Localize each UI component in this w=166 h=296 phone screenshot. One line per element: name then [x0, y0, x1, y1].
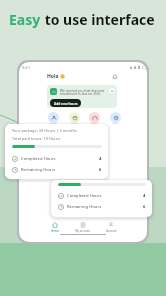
- button[interactable]: Home: [46, 221, 64, 234]
- staticText: Add new hours: [54, 101, 78, 105]
- button[interactable]: Remaining Hours: [58, 204, 146, 210]
- button[interactable]: Shortcut: [110, 112, 121, 123]
- button[interactable]: Shortcut: [69, 112, 80, 123]
- staticText: 6: [99, 167, 102, 173]
- staticText: Completed Hours: [67, 193, 102, 199]
- button[interactable]: Shortcut: [48, 112, 59, 123]
- staticText: Home: [51, 229, 59, 233]
- button[interactable]: Notifications: [111, 73, 118, 80]
- staticText: Your package: 30 Hours | 3 months: [12, 128, 77, 133]
- button[interactable]: Dismiss: [109, 88, 114, 93]
- staticText: 4: [99, 156, 102, 162]
- staticText: 9:41: [22, 65, 30, 70]
- staticText: Easy: [9, 10, 41, 29]
- button[interactable]: Completed Hours: [58, 193, 146, 199]
- staticText: Remaining Hours: [21, 167, 56, 173]
- staticText: to use interface: [41, 10, 155, 29]
- staticText: Total paid hours: 10 Hours: [12, 136, 61, 141]
- button[interactable]: Account: [102, 221, 120, 234]
- button[interactable]: Shortcut: [89, 112, 100, 123]
- staticText: 6: [143, 204, 146, 210]
- button[interactable]: Completed Hours: [12, 156, 102, 162]
- staticText: Account: [106, 229, 117, 233]
- staticText: Remaining Hours: [67, 204, 102, 210]
- button[interactable]: My account: [74, 221, 92, 234]
- staticText: Completed Hours: [21, 156, 56, 162]
- staticText: My account: [75, 229, 91, 233]
- staticText: We remind you that the next installment …: [60, 88, 105, 96]
- staticText: Hola: [47, 73, 59, 80]
- button[interactable]: Remaining Hours: [12, 167, 102, 173]
- button[interactable]: Add new hours: [50, 99, 81, 107]
- staticText: 4: [143, 193, 146, 199]
